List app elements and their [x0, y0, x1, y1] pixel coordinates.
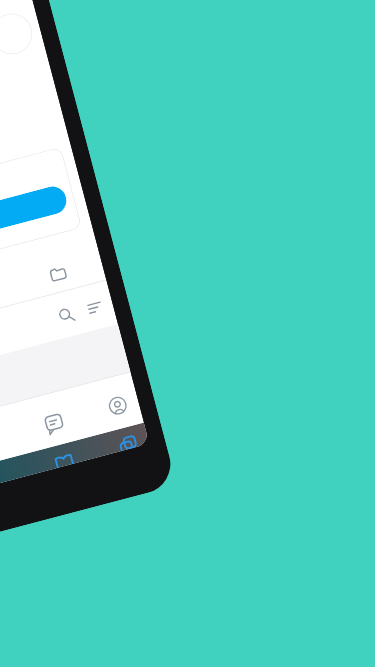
- button[interactable]: [0, 147, 82, 268]
- button[interactable]: Messages: [32, 401, 76, 445]
- button[interactable]: Folder: [36, 251, 80, 295]
- button[interactable]: Search: [46, 295, 85, 334]
- button[interactable]: Primary action: [0, 183, 69, 246]
- button[interactable]: Account: [96, 384, 140, 428]
- button[interactable]: Filter: [75, 288, 114, 327]
- button[interactable]: Profile: [0, 9, 37, 59]
